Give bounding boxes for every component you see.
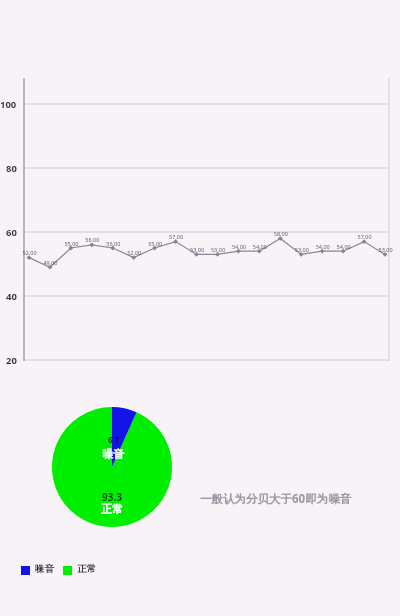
button[interactable] [0,0,400,616]
